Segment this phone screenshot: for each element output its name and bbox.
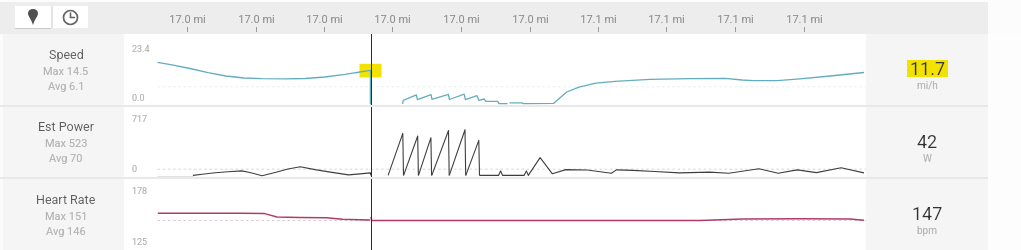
staticText: Heart Rate: [36, 192, 96, 207]
staticText: 11.7: [910, 58, 946, 79]
staticText: Avg 6.1: [48, 80, 85, 93]
staticText: Max 523: [45, 137, 88, 150]
staticText: 125: [132, 237, 148, 248]
staticText: 0.0: [132, 93, 145, 104]
staticText: Max 151: [45, 210, 88, 223]
button[interactable]: Est Power: [0, 107, 1021, 177]
staticText: 17.1 mi: [634, 13, 699, 26]
staticText: 17.0 mi: [292, 13, 357, 26]
staticText: bpm: [917, 225, 937, 237]
staticText: 17.1 mi: [703, 13, 768, 26]
staticText: Est Power: [38, 119, 94, 134]
staticText: 42: [917, 131, 938, 152]
staticText: 17.0 mi: [498, 13, 563, 26]
staticText: Speed: [49, 47, 84, 62]
staticText: 17.0 mi: [224, 13, 289, 26]
staticText: mi/h: [917, 80, 938, 92]
button[interactable]: Speed: [0, 34, 1021, 105]
staticText: 0: [132, 164, 138, 175]
staticText: 17.1 mi: [772, 13, 837, 26]
staticText: 17.0 mi: [360, 13, 425, 26]
staticText: Avg 146: [46, 225, 86, 238]
staticText: 178: [132, 186, 148, 197]
staticText: 147: [912, 203, 943, 224]
staticText: 17.0 mi: [155, 13, 220, 26]
button[interactable]: Show on map: [15, 6, 51, 28]
staticText: 717: [132, 114, 148, 125]
staticText: Avg 70: [49, 152, 83, 165]
button[interactable]: Show over time: [53, 6, 88, 28]
staticText: 17.1 mi: [566, 13, 631, 26]
staticText: W: [923, 153, 932, 165]
staticText: 23.4: [132, 44, 150, 55]
button[interactable]: Heart Rate: [0, 179, 1021, 250]
staticText: 17.0 mi: [429, 13, 494, 26]
staticText: Max 14.5: [43, 65, 89, 78]
